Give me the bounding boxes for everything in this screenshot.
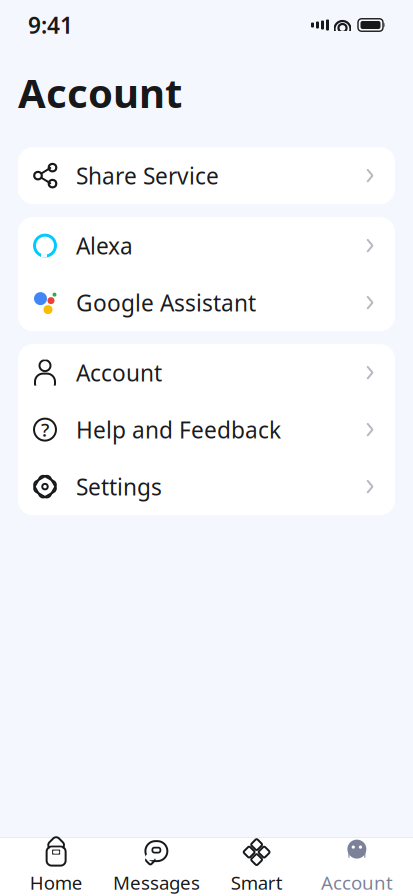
button[interactable]: Google Assistant xyxy=(18,274,395,331)
staticText: ? xyxy=(41,417,49,442)
staticText: Messages xyxy=(113,870,200,895)
button[interactable]: Messages xyxy=(106,838,206,896)
staticText: Google Assistant xyxy=(76,288,256,318)
staticText: Smart xyxy=(231,870,283,895)
button[interactable]: Account xyxy=(307,838,407,896)
staticText: Alexa xyxy=(76,231,133,261)
staticText: Home xyxy=(30,870,83,895)
button[interactable]: Settings xyxy=(18,458,395,515)
staticText: Account xyxy=(76,358,162,388)
staticText: Account xyxy=(18,66,182,119)
button[interactable]: Share Service xyxy=(18,147,395,204)
staticText: Help and Feedback xyxy=(76,415,281,445)
button[interactable]: Smart xyxy=(206,838,307,896)
staticText: Account xyxy=(321,870,393,895)
staticText: 9:41 xyxy=(28,10,73,40)
button[interactable]: Account xyxy=(18,344,395,401)
button[interactable]: Alexa xyxy=(18,217,395,274)
button[interactable]: ? xyxy=(18,401,395,458)
staticText: Settings xyxy=(76,472,162,502)
staticText: Share Service xyxy=(76,161,219,191)
button[interactable]: Home xyxy=(6,838,106,896)
